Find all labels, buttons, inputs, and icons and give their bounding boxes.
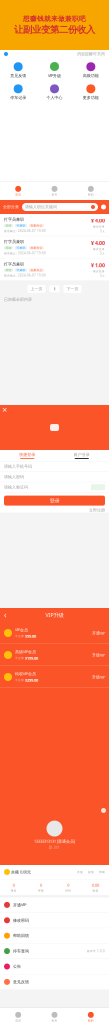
- staticText: 0.00: [92, 883, 99, 888]
- staticText: 收益: [92, 889, 98, 892]
- staticText: 打字员兼职: [4, 239, 24, 244]
- staticText: 日结: [5, 268, 11, 272]
- staticText: ‹: [4, 610, 6, 620]
- staticText: 升级VIP: [92, 652, 105, 658]
- staticText: 登录: [49, 497, 59, 504]
- staticText: ¥199.00: [25, 655, 38, 661]
- button[interactable]: 停车查询: [0, 944, 109, 959]
- staticText: 在家办公: [30, 268, 42, 272]
- staticText: 个人中心: [46, 95, 62, 100]
- button[interactable]: 发布: [36, 186, 73, 196]
- button[interactable]: 个人中心: [36, 84, 73, 100]
- staticText: 审核: [38, 889, 44, 892]
- staticText: 立即注册: [89, 508, 105, 512]
- staticText: 报名截止: 2024-06-07 19:00: [4, 229, 46, 233]
- staticText: 帮助回馈: [13, 933, 29, 938]
- staticText: 高级VIP会员: [15, 649, 36, 654]
- button[interactable]: 公告: [0, 959, 109, 974]
- staticText: 0: [67, 883, 69, 888]
- button[interactable]: 开通VIP: [0, 897, 109, 913]
- staticText: 不过期: [15, 656, 24, 660]
- button[interactable]: 我的: [73, 1012, 109, 1022]
- staticText: 开通VIP: [13, 902, 26, 907]
- button[interactable]: 高级功能: [73, 62, 109, 78]
- staticText: 报名截止: 2024-06-07 19:00: [4, 251, 46, 255]
- staticText: ¥299.00: [25, 677, 38, 683]
- button[interactable]: VIP会员: [0, 622, 109, 644]
- staticText: 每次任务: [93, 270, 105, 273]
- staticText: 可兼职: [16, 224, 25, 227]
- staticText: 每次任务: [93, 225, 105, 228]
- button[interactable]: Back: [0, 610, 10, 620]
- button[interactable]: 特权VIP会员: [0, 666, 109, 688]
- staticText: 升级VIP: [92, 674, 105, 680]
- staticText: 停车记录: [10, 95, 26, 100]
- staticText: 想赚钱就来做兼职吧: [23, 15, 86, 23]
- staticText: 请输入验证码: [4, 485, 28, 490]
- staticText: 我的: [88, 193, 94, 196]
- button[interactable]: 我的: [73, 186, 109, 196]
- staticText: 在家办公: [30, 224, 42, 227]
- staticText: 3人: [100, 229, 105, 233]
- button[interactable]: 登录: [4, 496, 105, 506]
- staticText: 报名: [11, 889, 17, 892]
- staticText: 0: [40, 883, 42, 888]
- staticText: VIP升级: [48, 73, 61, 78]
- button[interactable]: Settings: [98, 805, 109, 816]
- button[interactable]: 意见反馈: [0, 974, 109, 990]
- staticText: 特权VIP会员: [15, 671, 36, 676]
- button[interactable]: 打字员兼职: [0, 214, 109, 236]
- staticText: 我的: [88, 1019, 94, 1022]
- staticText: 首页: [15, 1019, 21, 1022]
- staticText: ¥99.00: [25, 633, 36, 639]
- button[interactable]: 首页: [0, 186, 36, 196]
- staticText: 不过期: [15, 634, 24, 638]
- staticText: 意见反馈: [10, 73, 26, 78]
- button[interactable]: 帮助回馈: [0, 928, 109, 944]
- staticText: 3人: [100, 252, 105, 255]
- staticText: 停车查询: [13, 949, 29, 953]
- staticText: 公告: [13, 964, 21, 969]
- staticText: ID: 301: [49, 846, 60, 849]
- button[interactable]: 更多功能: [73, 84, 109, 100]
- staticText: 待结: [65, 889, 71, 892]
- staticText: 可兼职: [16, 246, 25, 249]
- staticText: 下一页: [66, 286, 78, 291]
- button[interactable]: 打字员兼职: [0, 259, 109, 281]
- staticText: 消息提醒可关闭: [77, 51, 105, 56]
- staticText: 在家办公: [30, 246, 42, 249]
- staticText: 请输入职位关键词: [25, 204, 57, 209]
- button[interactable]: Close: [0, 405, 10, 415]
- staticText: VIP升级: [45, 611, 63, 618]
- staticText: 全部分类: [3, 204, 19, 209]
- staticText: 打字员兼职: [4, 262, 24, 266]
- staticText: 1: [53, 286, 55, 291]
- staticText: 0: [13, 883, 15, 888]
- staticText: 13333313131 [普通会员]: [34, 839, 75, 844]
- button[interactable]: 修改密码: [0, 913, 109, 928]
- button[interactable]: 意见反馈: [0, 62, 36, 78]
- staticText: 更多功能: [83, 95, 99, 100]
- staticText: 请输入手机号码: [4, 464, 32, 469]
- button[interactable]: 停车记录: [0, 84, 36, 100]
- button[interactable]: 首页: [0, 1012, 36, 1022]
- button[interactable]: VIP升级: [36, 62, 73, 78]
- button[interactable]: 高级VIP会员: [0, 644, 109, 666]
- staticText: 充值: [77, 870, 83, 874]
- button[interactable]: 打字员兼职: [0, 236, 109, 259]
- staticText: 日结: [5, 224, 11, 227]
- staticText: VIP会员: [15, 627, 28, 632]
- staticText: 让副业变第二份收入: [14, 24, 95, 35]
- staticText: 账户登录: [74, 452, 90, 457]
- staticText: 请输入密码: [4, 474, 24, 479]
- staticText: ✕: [2, 406, 8, 414]
- staticText: 3人: [100, 274, 105, 277]
- staticText: 已加载全部内容: [4, 297, 32, 302]
- staticText: 快捷登录: [19, 452, 35, 457]
- staticText: 日结: [5, 246, 11, 249]
- staticText: 修改密码: [13, 918, 29, 923]
- staticText: 余额 0.00元: [10, 869, 31, 875]
- staticText: 首页: [15, 193, 21, 196]
- staticText: ¥ 4.00: [91, 239, 105, 246]
- button[interactable]: 发布: [36, 1012, 73, 1022]
